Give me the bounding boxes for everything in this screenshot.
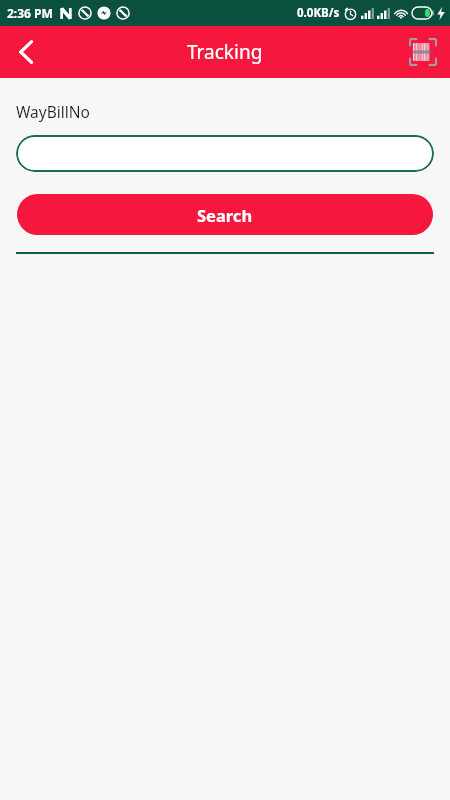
staticText: 2:36 PM bbox=[7, 5, 53, 21]
button[interactable]: Search bbox=[17, 194, 433, 235]
button[interactable]: Scan barcode bbox=[404, 33, 442, 71]
button[interactable]: WayBillNo input bbox=[16, 135, 434, 172]
staticText: WayBillNo bbox=[16, 101, 90, 122]
staticText: Search bbox=[197, 204, 253, 226]
staticText: Tracking bbox=[187, 39, 263, 65]
staticText: 0.0KB/s bbox=[297, 5, 340, 21]
button[interactable]: Back bbox=[6, 32, 46, 72]
